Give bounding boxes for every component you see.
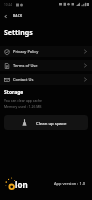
staticText: Privacy Policy xyxy=(13,49,39,54)
staticText: Contact Us xyxy=(13,77,34,82)
button[interactable]: Back xyxy=(0,12,92,20)
staticText: BACK xyxy=(13,14,23,18)
staticText: Settings xyxy=(4,28,33,38)
staticText: Storage xyxy=(4,89,24,96)
button[interactable]: Terms of Use xyxy=(0,60,92,71)
other: Back xyxy=(4,15,7,18)
button[interactable]: Contact Us xyxy=(0,74,92,85)
staticText: Memory used : 1.26 MB xyxy=(4,104,42,109)
staticText: You can clear app cache xyxy=(4,98,43,103)
button[interactable]: Privacy Policy xyxy=(0,46,92,57)
staticText: lon xyxy=(15,179,28,190)
staticText: Clean up space xyxy=(36,120,67,126)
staticText: Terms of Use xyxy=(13,63,38,68)
staticText: App version : 1.0 xyxy=(54,181,86,186)
button[interactable]: Clean up space xyxy=(4,115,88,130)
staticText: 10:24 xyxy=(4,3,13,7)
